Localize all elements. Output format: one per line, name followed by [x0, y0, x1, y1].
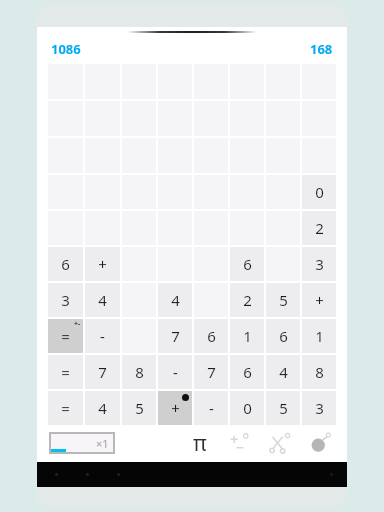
button[interactable]: 1	[302, 319, 336, 353]
button[interactable]: =	[48, 319, 83, 353]
button[interactable]: 6	[48, 247, 83, 281]
button[interactable]: 6	[266, 319, 300, 353]
button[interactable]: 7	[194, 355, 228, 389]
button[interactable]: +	[158, 391, 192, 425]
button[interactable]: =	[48, 391, 83, 425]
button[interactable]: -	[158, 355, 192, 389]
button[interactable]: 5	[266, 283, 300, 317]
button[interactable]: Pi power	[185, 428, 215, 458]
button[interactable]: Bomb	[305, 428, 335, 458]
button[interactable]: 7	[158, 319, 192, 353]
button[interactable]: 8	[302, 355, 336, 389]
button[interactable]: 5	[266, 391, 300, 425]
button[interactable]: Plus minus	[225, 428, 255, 458]
button[interactable]: 1	[230, 319, 264, 353]
button[interactable]: 6	[194, 319, 228, 353]
button[interactable]: 4	[85, 283, 120, 317]
button[interactable]: 3	[302, 247, 336, 281]
staticText: ×1	[96, 436, 109, 451]
button[interactable]: 3	[302, 391, 336, 425]
button[interactable]: 4	[266, 355, 300, 389]
button[interactable]: +	[302, 283, 336, 317]
button[interactable]: 3	[48, 283, 83, 317]
button[interactable]: 5	[122, 391, 156, 425]
staticText: =	[61, 362, 70, 382]
button[interactable]: 7	[85, 355, 120, 389]
staticText: 6	[207, 326, 216, 346]
button[interactable]: Cut	[265, 428, 295, 458]
button[interactable]: 0	[302, 175, 336, 209]
button[interactable]: 2	[302, 211, 336, 245]
button[interactable]: 6	[230, 355, 264, 389]
button[interactable]: -	[194, 391, 228, 425]
button[interactable]: 2	[230, 283, 264, 317]
staticText: 5	[279, 398, 288, 418]
staticText: 6	[243, 362, 252, 382]
button[interactable]: 6	[230, 247, 264, 281]
button[interactable]: =	[48, 355, 83, 389]
button[interactable]: ×1	[51, 434, 113, 452]
staticText: 4	[171, 290, 180, 310]
button[interactable]: 8	[122, 355, 156, 389]
button[interactable]: 1086	[51, 40, 81, 58]
staticText: 7	[98, 362, 107, 382]
staticText: +	[171, 398, 180, 418]
staticText: +	[98, 254, 107, 274]
staticText: 1	[315, 326, 324, 346]
button[interactable]: 168	[310, 40, 333, 58]
button[interactable]: +	[85, 247, 120, 281]
staticText: 4	[98, 398, 107, 418]
button[interactable]: 0	[230, 391, 264, 425]
button[interactable]: -	[85, 319, 120, 353]
button[interactable]: 4	[85, 391, 120, 425]
button[interactable]: 4	[158, 283, 192, 317]
staticText: 5	[135, 398, 144, 418]
staticText: 2	[315, 218, 324, 238]
